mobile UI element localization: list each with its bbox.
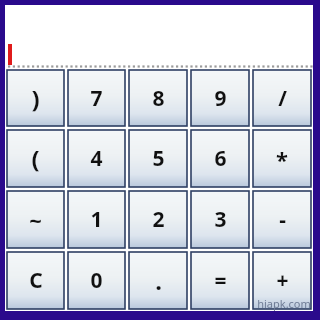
button[interactable]: 8 <box>129 70 187 126</box>
button[interactable]: / <box>253 70 311 126</box>
staticText: 9 <box>214 84 227 113</box>
staticText: 4 <box>90 144 103 173</box>
button[interactable]: 9 <box>191 70 249 126</box>
button[interactable]: = <box>191 252 249 309</box>
staticText: 1 <box>90 205 103 234</box>
button[interactable]: 0 <box>68 252 125 309</box>
staticText: 8 <box>152 84 165 113</box>
staticText: 7 <box>90 84 103 113</box>
staticText: ) <box>31 82 40 115</box>
staticText: / <box>278 84 287 113</box>
staticText: 5 <box>152 144 165 173</box>
staticText: . <box>155 264 162 297</box>
button[interactable]: 6 <box>191 130 249 187</box>
staticText: hiapk.com <box>257 296 311 311</box>
staticText: C <box>29 266 43 295</box>
staticText: 3 <box>214 205 227 234</box>
button[interactable]: * <box>253 130 311 187</box>
button[interactable]: ~ <box>7 191 64 248</box>
button[interactable] <box>5 5 313 68</box>
staticText: ( <box>31 142 40 175</box>
button[interactable]: 4 <box>68 130 125 187</box>
staticText: 0 <box>90 266 103 295</box>
staticText: * <box>276 144 288 174</box>
staticText: + <box>276 266 289 295</box>
button[interactable]: 5 <box>129 130 187 187</box>
staticText: = <box>214 266 227 295</box>
button[interactable]: 1 <box>68 191 125 248</box>
button[interactable]: ( <box>7 130 64 187</box>
staticText: - <box>279 205 286 234</box>
button[interactable]: 7 <box>68 70 125 126</box>
button[interactable]: 2 <box>129 191 187 248</box>
button[interactable]: ) <box>7 70 64 126</box>
staticText: ~ <box>29 205 42 235</box>
button[interactable]: C <box>7 252 64 309</box>
button[interactable]: . <box>129 252 187 309</box>
button[interactable]: + <box>253 252 311 309</box>
staticText: 2 <box>152 205 165 234</box>
staticText: 6 <box>214 144 227 173</box>
button[interactable]: 3 <box>191 191 249 248</box>
button[interactable]: - <box>253 191 311 248</box>
